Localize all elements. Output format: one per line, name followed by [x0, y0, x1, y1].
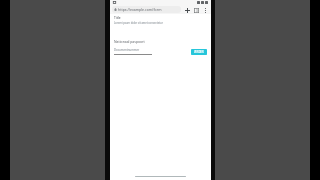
- button[interactable]: More options: [201, 6, 209, 14]
- staticText: https://example.com/form: [118, 7, 162, 12]
- staticText: Documentnummer: [114, 48, 140, 52]
- staticText: Lorem ipsum dolor sit amet consectetur: [114, 21, 163, 25]
- button[interactable]: New tab: [183, 6, 191, 14]
- staticText: Title: [114, 16, 121, 20]
- staticText: 3: [196, 9, 198, 13]
- button[interactable]: VERDER: [191, 49, 207, 55]
- button[interactable]: Documentnummer: [114, 48, 152, 55]
- staticText: Nationaal paspoort: [114, 39, 145, 44]
- staticText: VERDER: [194, 50, 204, 54]
- button[interactable]: https://example.com/form: [112, 6, 181, 13]
- button[interactable]: Switch tabs: [192, 6, 200, 14]
